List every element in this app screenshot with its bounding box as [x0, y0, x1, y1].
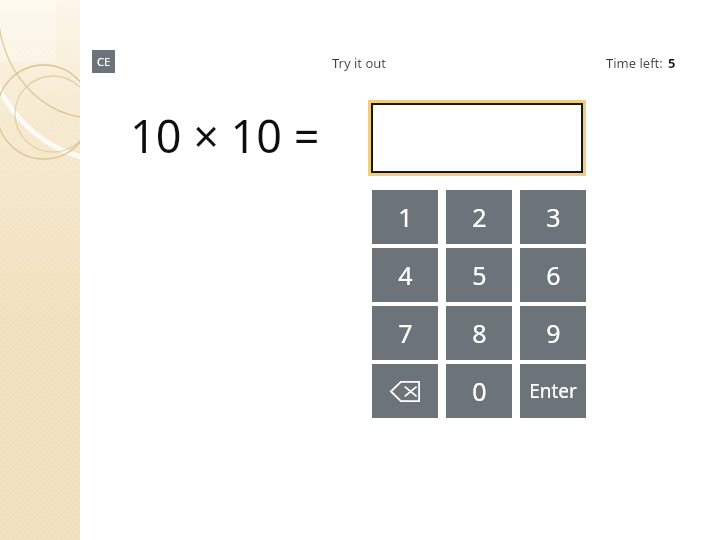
staticText: 3 [546, 200, 561, 234]
staticText: 5 [472, 258, 487, 292]
staticText: 4 [398, 258, 413, 292]
staticText: Try it out [332, 54, 386, 72]
staticText: 8 [472, 316, 487, 350]
button[interactable]: 7 [372, 306, 438, 360]
button[interactable]: 6 [520, 248, 586, 302]
button[interactable]: 8 [446, 306, 512, 360]
button[interactable]: Enter [520, 364, 586, 418]
button[interactable]: 0 [446, 364, 512, 418]
staticText: 9 [546, 316, 561, 350]
button[interactable]: 3 [520, 190, 586, 244]
button[interactable]: 2 [446, 190, 512, 244]
button[interactable]: Backspace [372, 364, 438, 418]
button[interactable]: 1 [372, 190, 438, 244]
button[interactable]: 4 [372, 248, 438, 302]
staticText: 5 [668, 54, 676, 72]
staticText: 6 [546, 258, 561, 292]
staticText: Enter [529, 378, 577, 404]
button[interactable]: Answer field [368, 100, 586, 176]
button[interactable]: 5 [446, 248, 512, 302]
button[interactable]: CE [92, 50, 115, 73]
staticText: 0 [472, 374, 487, 408]
staticText: 2 [472, 200, 487, 234]
staticText: 1 [398, 200, 413, 234]
staticText: Time left: [606, 54, 663, 72]
staticText: 10 × 10 = [130, 105, 320, 166]
staticText: 7 [398, 316, 413, 350]
staticText: CE [97, 54, 111, 69]
button[interactable]: 9 [520, 306, 586, 360]
